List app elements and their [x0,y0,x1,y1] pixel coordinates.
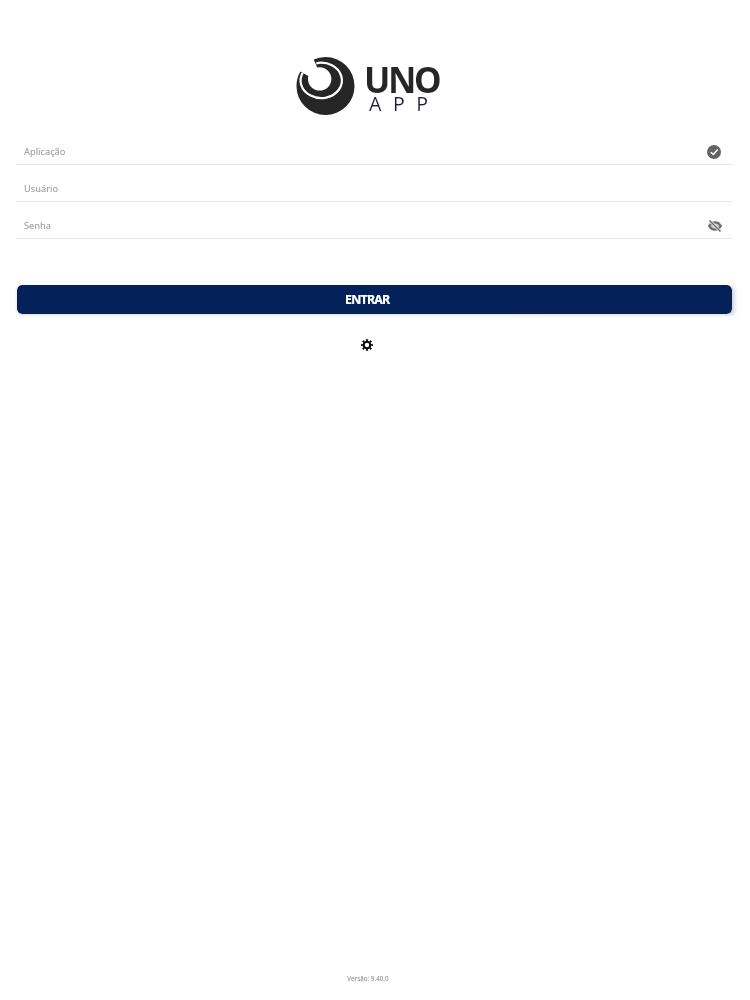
staticText: Versão: 9.40.0 [347,974,389,983]
button[interactable]: ENTRAR [17,285,732,314]
staticText: Aplicação [24,145,66,158]
staticText: UNO [364,56,440,104]
staticText: Senha [24,219,52,232]
staticText: A P P [369,90,432,117]
button[interactable]: Aplicação [0,134,750,171]
staticText: Usuário [24,182,59,195]
button[interactable]: Usuário [0,171,750,208]
button[interactable]: Senha [0,208,750,245]
staticText: ENTRAR [345,291,390,308]
button[interactable]: Settings [353,331,381,359]
